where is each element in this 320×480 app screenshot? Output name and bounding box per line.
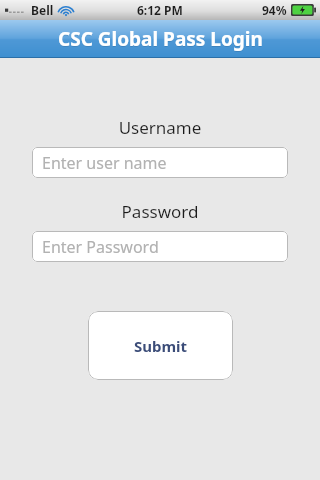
staticText: CSC Global Pass Login <box>58 27 263 53</box>
staticText: CSC Global Pass Login <box>58 26 263 52</box>
staticText: Password <box>0 200 320 223</box>
staticText: Bell <box>31 2 54 18</box>
staticText: Enter Password <box>42 236 159 258</box>
staticText: Username <box>0 116 320 139</box>
button[interactable]: Submit <box>88 311 233 380</box>
staticText: Enter user name <box>42 152 167 174</box>
button[interactable]: Enter user name <box>32 147 288 178</box>
staticText: 6:12 PM <box>137 2 183 18</box>
staticText: 94% <box>262 2 287 18</box>
staticText: Submit <box>134 336 188 356</box>
button[interactable]: Enter Password <box>32 231 288 262</box>
